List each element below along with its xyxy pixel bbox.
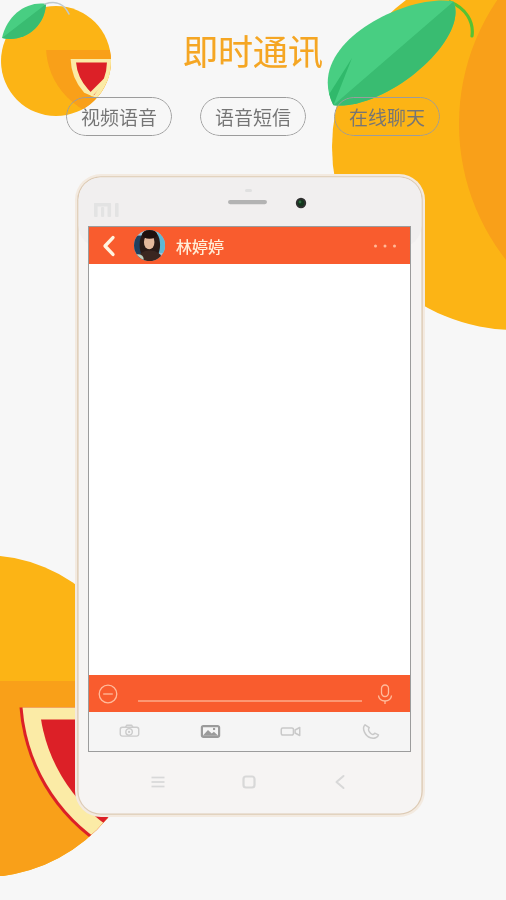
button[interactable]: Add attachment xyxy=(96,682,120,706)
button[interactable]: 语音短信 xyxy=(200,97,306,136)
staticText: 林婷婷 xyxy=(176,234,225,257)
staticText: 在线聊天 xyxy=(349,103,426,131)
button[interactable]: 在线聊天 xyxy=(334,97,440,136)
button[interactable]: Gallery xyxy=(170,712,250,751)
button[interactable]: Voice call xyxy=(330,712,410,751)
button[interactable]: Video call xyxy=(250,712,330,751)
button[interactable]: Contact avatar xyxy=(134,230,165,261)
button[interactable]: Back xyxy=(89,227,129,264)
staticText: 语音短信 xyxy=(215,103,292,131)
staticText: 视频语音 xyxy=(81,103,158,131)
staticText: 即时通讯 xyxy=(183,24,324,75)
button[interactable]: Camera xyxy=(89,712,170,751)
button[interactable]: Voice message xyxy=(372,681,398,707)
button[interactable]: More options xyxy=(363,227,407,264)
button[interactable]: 视频语音 xyxy=(66,97,172,136)
